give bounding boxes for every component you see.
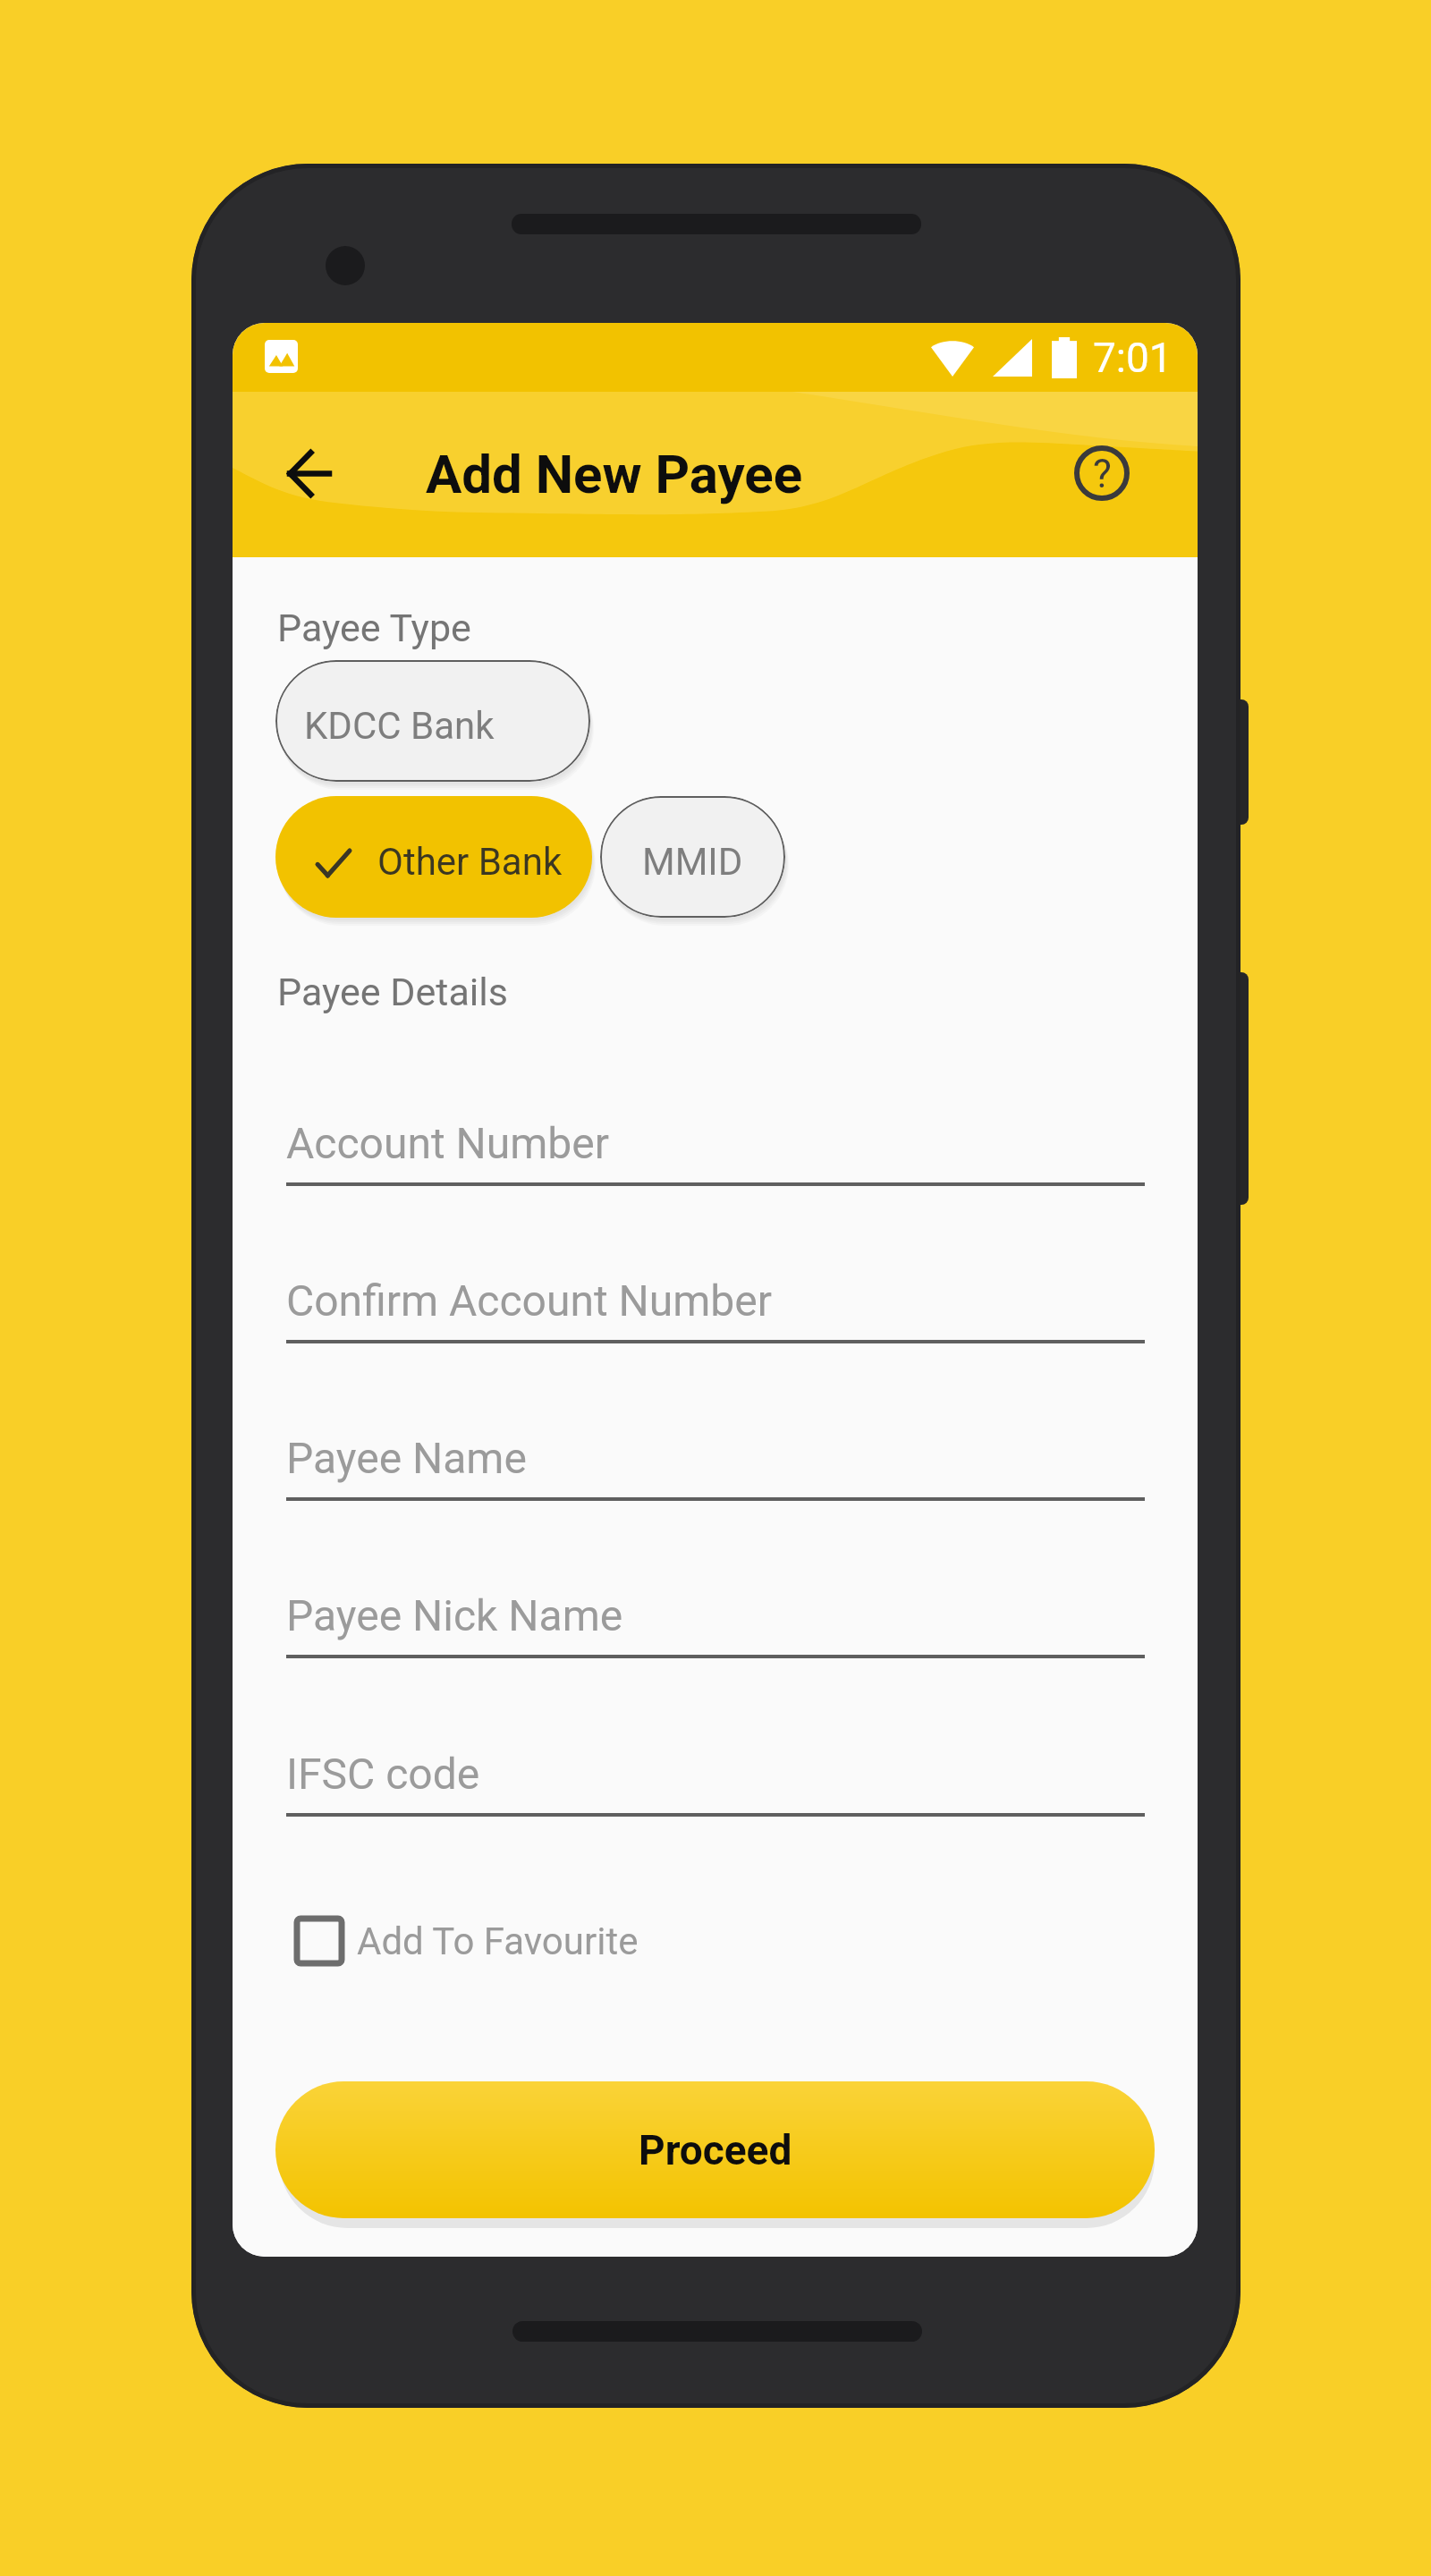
button[interactable]: Help [1057,428,1147,518]
button[interactable]: Proceed [275,2081,1155,2218]
staticText: Add To Favourite [357,1919,639,1963]
button[interactable]: Add To Favourite [286,1908,639,1974]
staticText: Payee Type [277,606,471,650]
staticText: MMID [642,840,743,884]
staticText: Payee Name [286,1433,527,1483]
staticText: Other Bank [377,840,563,884]
button[interactable]: Back [264,428,353,518]
staticText: 7:01 [1093,334,1173,382]
staticText: Payee Details [277,970,508,1014]
staticText: Add New Payee [426,443,803,505]
staticText: Confirm Account Number [286,1275,772,1326]
staticText: Payee Nick Name [286,1590,623,1640]
button[interactable]: MMID [600,796,785,918]
staticText: KDCC Bank [304,704,495,748]
staticText: Proceed [639,2126,792,2174]
button[interactable]: Other Bank [275,796,592,918]
button[interactable]: KDCC Bank [275,660,590,782]
staticText: IFSC code [286,1749,480,1799]
staticText: ? [1093,451,1112,497]
staticText: Account Number [286,1118,609,1168]
